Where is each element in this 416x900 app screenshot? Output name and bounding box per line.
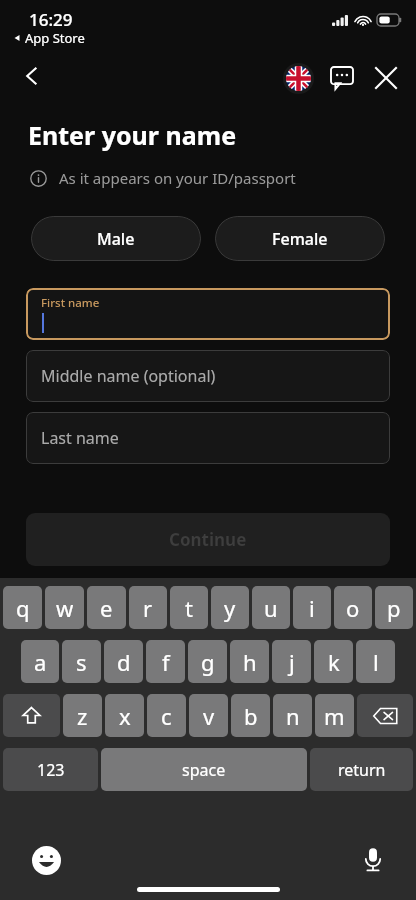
button[interactable]: m bbox=[315, 694, 354, 737]
staticText: c bbox=[161, 701, 172, 731]
staticText: z bbox=[77, 701, 88, 731]
button[interactable]: Emoji bbox=[29, 843, 63, 877]
staticText: Enter your name bbox=[28, 118, 237, 152]
staticText: b bbox=[244, 701, 258, 731]
staticText: a bbox=[34, 647, 47, 677]
button[interactable]: w bbox=[45, 586, 84, 629]
button[interactable]: l bbox=[356, 640, 395, 683]
button[interactable]: Chat bbox=[320, 56, 364, 100]
button[interactable]: u bbox=[252, 586, 290, 629]
staticText: i bbox=[309, 593, 315, 623]
button[interactable]: h bbox=[230, 640, 269, 683]
staticText: u bbox=[264, 593, 278, 623]
button[interactable]: Female bbox=[215, 216, 385, 261]
button[interactable]: t bbox=[170, 586, 208, 629]
staticText: return bbox=[338, 759, 386, 781]
button[interactable]: a bbox=[21, 640, 59, 683]
staticText: Continue bbox=[169, 528, 247, 551]
staticText: m bbox=[324, 701, 345, 731]
button[interactable]: y bbox=[211, 586, 249, 629]
button[interactable]: First name bbox=[26, 288, 390, 340]
staticText: w bbox=[56, 593, 74, 623]
staticText: f bbox=[162, 647, 170, 677]
staticText: d bbox=[117, 647, 131, 677]
staticText: p bbox=[387, 593, 401, 623]
staticText: g bbox=[201, 647, 215, 677]
button[interactable]: r bbox=[129, 586, 167, 629]
staticText: As it appears on your ID/passport bbox=[59, 168, 296, 188]
staticText: x bbox=[119, 701, 131, 731]
button[interactable]: Backspace bbox=[357, 694, 413, 737]
button[interactable]: d bbox=[104, 640, 143, 683]
button[interactable]: j bbox=[272, 640, 311, 683]
staticText: y bbox=[224, 593, 236, 623]
staticText: k bbox=[328, 647, 340, 677]
staticText: e bbox=[100, 593, 113, 623]
button[interactable]: return bbox=[310, 748, 413, 791]
button[interactable]: s bbox=[62, 640, 101, 683]
button[interactable]: v bbox=[189, 694, 228, 737]
button[interactable]: space bbox=[101, 748, 307, 791]
button[interactable]: Dictation bbox=[356, 843, 390, 877]
staticText: t bbox=[185, 593, 193, 623]
button[interactable]: Male bbox=[31, 216, 201, 261]
button[interactable]: Back bbox=[8, 52, 56, 100]
staticText: n bbox=[286, 701, 300, 731]
staticText: v bbox=[203, 701, 215, 731]
button[interactable]: e bbox=[87, 586, 126, 629]
button[interactable]: q bbox=[3, 586, 42, 629]
staticText: r bbox=[143, 593, 153, 623]
button[interactable]: x bbox=[105, 694, 144, 737]
button[interactable]: g bbox=[188, 640, 227, 683]
staticText: space bbox=[182, 759, 226, 781]
staticText: Male bbox=[97, 228, 135, 250]
staticText: o bbox=[346, 593, 360, 623]
button[interactable]: Language bbox=[276, 56, 320, 100]
button[interactable]: Close bbox=[364, 56, 408, 100]
button[interactable]: p bbox=[375, 586, 413, 629]
button[interactable]: 123 bbox=[3, 748, 98, 791]
button[interactable]: k bbox=[314, 640, 353, 683]
button[interactable]: f bbox=[146, 640, 185, 683]
button[interactable]: o bbox=[334, 586, 372, 629]
staticText: q bbox=[16, 593, 30, 623]
staticText: Last name bbox=[41, 427, 119, 449]
staticText: First name bbox=[41, 295, 100, 311]
button[interactable]: c bbox=[147, 694, 186, 737]
button[interactable]: Middle name (optional) bbox=[26, 350, 390, 402]
button[interactable]: i bbox=[293, 586, 331, 629]
button[interactable]: b bbox=[231, 694, 270, 737]
staticText: 16:29 bbox=[29, 8, 73, 31]
staticText: App Store bbox=[25, 29, 85, 47]
staticText: Female bbox=[272, 228, 328, 250]
staticText: s bbox=[76, 647, 87, 677]
button[interactable]: Last name bbox=[26, 412, 390, 464]
button[interactable]: z bbox=[63, 694, 102, 737]
staticText: l bbox=[373, 647, 379, 677]
button[interactable]: n bbox=[273, 694, 312, 737]
staticText: 123 bbox=[37, 759, 65, 781]
staticText: Middle name (optional) bbox=[41, 365, 216, 387]
button[interactable]: Shift bbox=[3, 694, 60, 737]
staticText: j bbox=[289, 647, 295, 677]
staticText: h bbox=[243, 647, 257, 677]
button[interactable]: Continue bbox=[26, 513, 390, 566]
